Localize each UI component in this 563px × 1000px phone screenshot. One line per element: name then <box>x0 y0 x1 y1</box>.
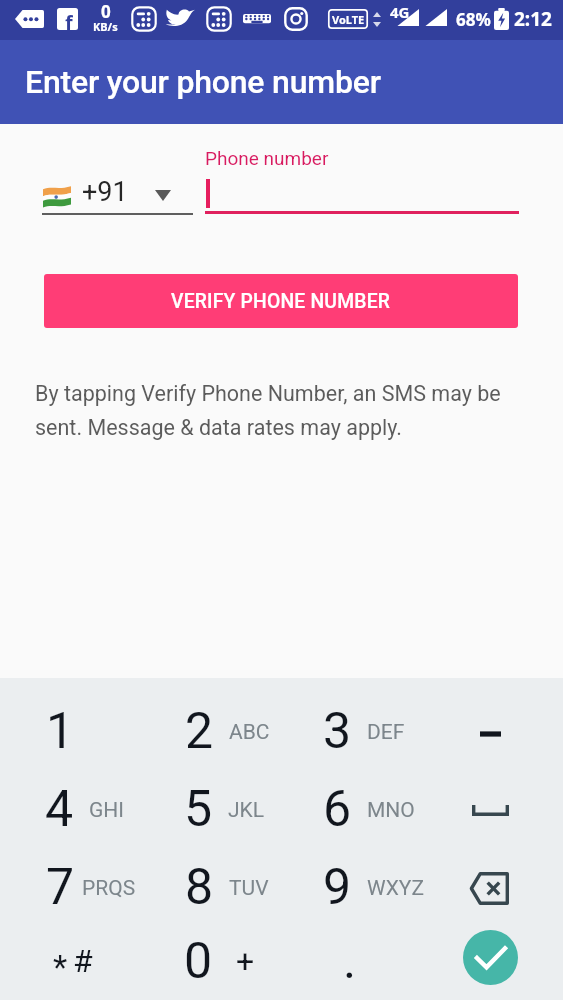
staticText: ABC <box>229 720 270 745</box>
staticText: 0 <box>184 932 213 991</box>
staticText: + <box>236 942 255 980</box>
staticText: MNO <box>367 798 415 823</box>
staticText: TUV <box>229 876 269 901</box>
button[interactable] <box>0 926 140 1000</box>
staticText: WXYZ <box>367 876 424 901</box>
button[interactable] <box>281 926 422 1000</box>
staticText: 2 <box>185 702 214 761</box>
other: Dash <box>480 729 501 739</box>
staticText: 4 <box>45 780 74 839</box>
other: Space <box>472 805 509 816</box>
staticText: DEF <box>367 720 405 745</box>
button[interactable] <box>422 848 563 926</box>
button[interactable]: +91 <box>42 163 193 215</box>
button[interactable] <box>281 692 422 770</box>
button[interactable]: Done <box>463 930 518 985</box>
button[interactable] <box>140 848 281 926</box>
staticText: 68% <box>456 8 491 31</box>
button[interactable] <box>422 926 563 1000</box>
other: Backspace <box>468 872 509 905</box>
staticText: . <box>343 932 357 991</box>
staticText: 7 <box>46 858 75 917</box>
button[interactable] <box>140 692 281 770</box>
staticText: VERIFY PHONE NUMBER <box>171 290 391 313</box>
button[interactable]: Phone number <box>205 145 519 217</box>
staticText: 8 <box>185 858 214 917</box>
staticText: f <box>65 9 73 31</box>
staticText: PRQS <box>82 876 136 901</box>
button[interactable] <box>140 926 281 1000</box>
staticText: GHI <box>89 798 124 823</box>
staticText: 4G <box>390 2 410 22</box>
staticText: # <box>73 942 93 980</box>
staticText: +91 <box>82 176 128 208</box>
staticText: 1 <box>46 702 75 761</box>
button[interactable] <box>422 692 563 770</box>
button[interactable] <box>281 770 422 848</box>
button[interactable] <box>140 770 281 848</box>
staticText: Enter your phone number <box>25 63 381 101</box>
button[interactable] <box>0 770 140 848</box>
staticText: 9 <box>323 858 352 917</box>
staticText: Phone number <box>205 147 329 169</box>
button[interactable] <box>0 692 140 770</box>
staticText: KB/s <box>93 19 118 34</box>
staticText: 6 <box>323 780 352 839</box>
button[interactable] <box>281 848 422 926</box>
staticText: 5 <box>184 780 213 839</box>
button[interactable]: VERIFY PHONE NUMBER <box>44 274 518 328</box>
staticText: VoLTE <box>332 12 365 27</box>
button[interactable] <box>422 770 563 848</box>
staticText: 0 <box>101 0 111 23</box>
button[interactable] <box>0 848 140 926</box>
staticText: By tapping Verify Phone Number, an SMS m… <box>35 381 517 441</box>
staticText: JKL <box>228 798 265 823</box>
staticText: 2:12 <box>514 6 552 32</box>
staticText: * <box>53 948 68 987</box>
staticText: 3 <box>323 702 352 761</box>
